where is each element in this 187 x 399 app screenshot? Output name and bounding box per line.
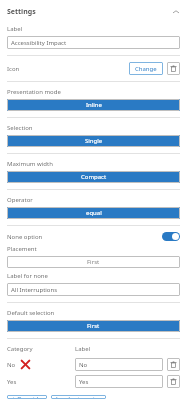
staticText: Settings bbox=[7, 7, 36, 17]
staticText: Presentation mode bbox=[7, 88, 61, 96]
staticText: Label bbox=[75, 345, 91, 353]
staticText: No bbox=[7, 361, 16, 369]
staticText: Label for none bbox=[7, 272, 48, 280]
button[interactable]: Yes bbox=[75, 375, 163, 388]
button[interactable]: All Interruptions bbox=[7, 283, 180, 296]
staticText: Label bbox=[7, 25, 23, 33]
button[interactable]: Delete bbox=[167, 358, 180, 371]
staticText: Load categories bbox=[56, 395, 101, 399]
staticText: Compact bbox=[81, 173, 107, 181]
button[interactable]: Delete bbox=[167, 62, 180, 75]
staticText: Change bbox=[135, 65, 157, 73]
button[interactable]: First bbox=[7, 256, 180, 268]
staticText: No bbox=[79, 361, 88, 369]
button[interactable]: Settings bbox=[7, 7, 180, 17]
button[interactable]: + Override bbox=[7, 395, 47, 399]
staticText: Placement bbox=[7, 245, 37, 253]
button[interactable]: Change bbox=[129, 62, 163, 75]
button[interactable]: Compact bbox=[7, 171, 180, 183]
staticText: Icon bbox=[7, 65, 20, 73]
staticText: Default selection bbox=[7, 309, 55, 317]
staticText: Operator bbox=[7, 196, 33, 204]
staticText: First bbox=[87, 322, 100, 330]
staticText: Category bbox=[7, 345, 33, 353]
staticText: Yes bbox=[7, 378, 17, 386]
button[interactable]: No bbox=[75, 358, 163, 371]
staticText: Yes bbox=[79, 378, 89, 386]
button[interactable]: Load categories bbox=[51, 395, 106, 399]
staticText: None option bbox=[7, 233, 43, 241]
staticText: Maximum width bbox=[7, 160, 53, 168]
button[interactable]: Delete bbox=[167, 375, 180, 388]
other: Collapse bbox=[172, 8, 180, 16]
button[interactable]: Accessibility Impact bbox=[7, 36, 180, 49]
button[interactable]: equal bbox=[7, 207, 180, 219]
staticText: + Override bbox=[12, 395, 42, 399]
button[interactable]: None option toggle bbox=[162, 232, 180, 241]
staticText: Accessibility Impact bbox=[11, 39, 67, 47]
staticText: equal bbox=[86, 209, 102, 217]
button[interactable]: Single bbox=[7, 135, 180, 147]
staticText: Single bbox=[85, 137, 103, 145]
staticText: Selection bbox=[7, 124, 33, 132]
button[interactable]: First bbox=[7, 320, 180, 332]
staticText: All Interruptions bbox=[11, 286, 58, 294]
button[interactable]: Inline bbox=[7, 99, 180, 111]
staticText: First bbox=[87, 258, 100, 266]
staticText: Inline bbox=[86, 101, 102, 109]
